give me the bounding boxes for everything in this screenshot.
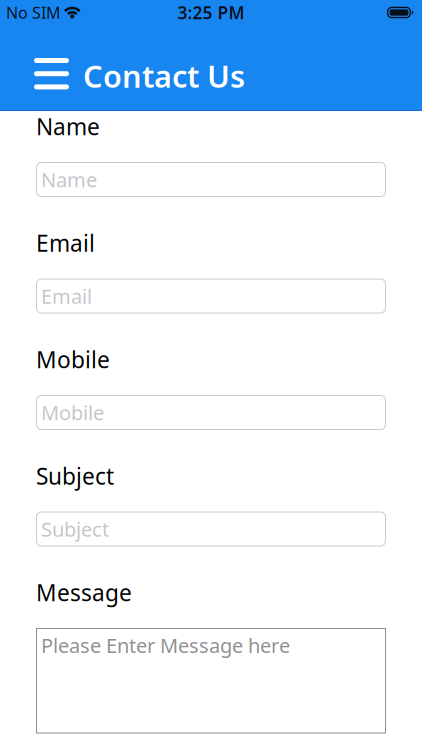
button[interactable]: Mobile: [36, 395, 386, 430]
staticText: Please Enter Message here: [41, 632, 290, 659]
button[interactable]: Please Enter Message here: [36, 628, 386, 733]
staticText: Name: [41, 166, 97, 193]
button[interactable]: Email: [36, 278, 386, 313]
staticText: Message: [36, 577, 132, 607]
staticText: 3:25 PM: [177, 1, 244, 24]
button[interactable]: Name: [36, 162, 386, 197]
staticText: Mobile: [36, 344, 110, 374]
button[interactable]: [34, 51, 69, 89]
staticText: Subject: [41, 516, 109, 542]
staticText: Email: [41, 283, 92, 309]
staticText: Contact Us: [83, 55, 245, 96]
staticText: Mobile: [41, 399, 104, 426]
staticText: Subject: [36, 461, 114, 491]
staticText: Email: [36, 228, 95, 258]
button[interactable]: Subject: [36, 511, 386, 546]
staticText: Name: [36, 111, 100, 141]
staticText: No SIM: [6, 2, 61, 23]
